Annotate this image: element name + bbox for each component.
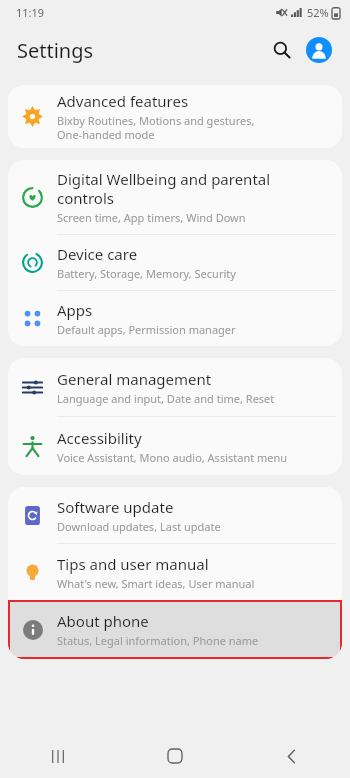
staticText: Advanced features — [57, 91, 189, 111]
button[interactable]: Home — [116, 734, 233, 778]
staticText: General management — [57, 369, 212, 389]
staticText: What's new, Smart ideas, User manual — [57, 576, 255, 591]
button[interactable]: About phone — [8, 600, 342, 659]
button[interactable]: Digital Wellbeing and parental controls — [8, 160, 342, 234]
staticText: Download updates, Last update — [57, 519, 221, 534]
button[interactable]: Advanced features — [8, 85, 342, 148]
staticText: Default apps, Permission manager — [57, 322, 236, 337]
button[interactable]: General management — [8, 358, 342, 416]
staticText: Bixby Routines, Motions and gestures, On… — [57, 113, 255, 142]
staticText: Apps — [57, 300, 93, 320]
staticText: Accessibility — [57, 428, 142, 448]
staticText: Screen time, App timers, Wind Down — [57, 210, 246, 225]
button[interactable]: Recents — [0, 734, 116, 778]
staticText: Digital Wellbeing and parental controls — [57, 169, 271, 208]
staticText: Voice Assistant, Mono audio, Assistant m… — [57, 450, 288, 465]
staticText: 52% — [307, 5, 329, 20]
button[interactable]: Software update — [8, 487, 342, 543]
staticText: Language and input, Date and time, Reset — [57, 391, 275, 406]
staticText: Tips and user manual — [57, 554, 209, 574]
staticText: Settings — [17, 37, 94, 64]
staticText: Battery, Storage, Memory, Security — [57, 266, 236, 281]
button[interactable]: Device care — [8, 235, 342, 290]
button[interactable]: Accessibility — [8, 417, 342, 475]
button[interactable]: Tips and user manual — [8, 544, 342, 600]
button[interactable]: Back — [233, 734, 350, 778]
staticText: About phone — [57, 611, 149, 631]
staticText: 11:19 — [16, 5, 45, 20]
staticText: Status, Legal information, Phone name — [57, 633, 259, 648]
staticText: Device care — [57, 244, 138, 264]
button[interactable]: Apps — [8, 291, 342, 346]
button[interactable]: Account — [302, 33, 336, 67]
staticText: Software update — [57, 497, 174, 517]
button[interactable]: Search — [265, 33, 299, 67]
